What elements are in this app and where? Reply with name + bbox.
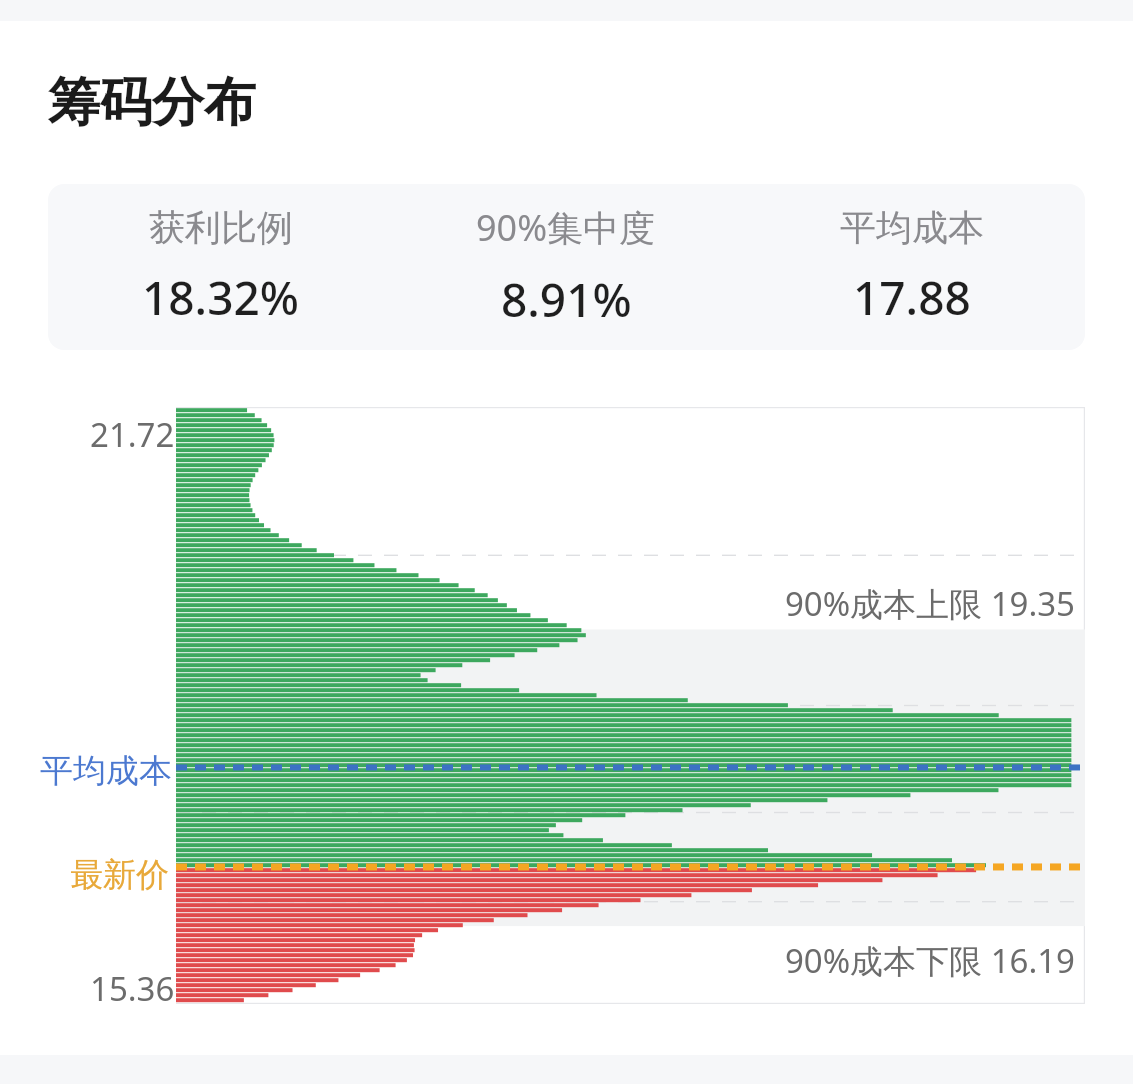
button[interactable]: 获利比例 xyxy=(48,205,393,329)
staticText: 筹码分布 xyxy=(48,70,256,136)
staticText: 最新价 xyxy=(70,854,169,896)
staticText: 获利比例 xyxy=(149,205,293,250)
staticText: 平均成本 xyxy=(840,205,984,250)
staticText: 平均成本 xyxy=(40,750,172,792)
button[interactable]: 平均成本 xyxy=(739,205,1085,329)
button[interactable]: 90%集中度 xyxy=(393,203,739,331)
staticText: 15.36 xyxy=(90,966,175,1011)
staticText: 8.91% xyxy=(501,268,632,331)
staticText: 90%成本下限 16.19 xyxy=(784,938,1075,983)
button[interactable]: 筹码分布 xyxy=(48,70,256,136)
staticText: 90%集中度 xyxy=(476,203,656,252)
button[interactable]: 获利比例 xyxy=(48,184,1085,350)
staticText: 18.32% xyxy=(142,266,299,329)
staticText: 90%成本上限 19.35 xyxy=(784,581,1075,626)
staticText: 21.72 xyxy=(90,412,175,457)
staticText: 17.88 xyxy=(853,266,971,329)
